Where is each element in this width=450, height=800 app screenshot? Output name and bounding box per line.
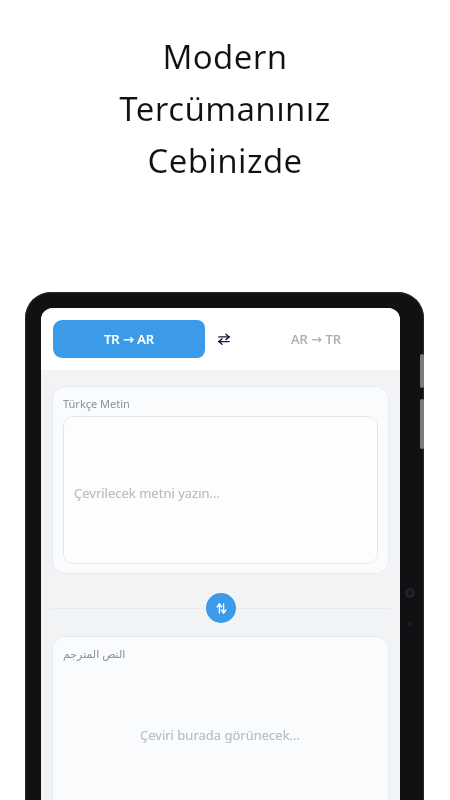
staticText: النص المترجم (63, 646, 126, 661)
button[interactable]: Swap translation direction (206, 593, 236, 623)
button[interactable]: النص المترجم (52, 636, 389, 800)
button[interactable]: Swap languages (205, 320, 243, 358)
button[interactable]: TR → AR (53, 320, 205, 358)
staticText: Çevrilecek metni yazın... (74, 484, 221, 502)
staticText: Tercümanınız (119, 86, 331, 131)
staticText: TR → AR (104, 330, 154, 348)
staticText: Cebinizde (147, 138, 303, 183)
button[interactable]: AR → TR (243, 320, 388, 358)
staticText: Türkçe Metin (63, 396, 130, 411)
button[interactable]: Türkçe Metin (52, 386, 389, 574)
staticText: Modern (162, 34, 288, 79)
staticText: AR → TR (291, 330, 341, 348)
staticText: Çeviri burada görünecek... (140, 726, 301, 744)
